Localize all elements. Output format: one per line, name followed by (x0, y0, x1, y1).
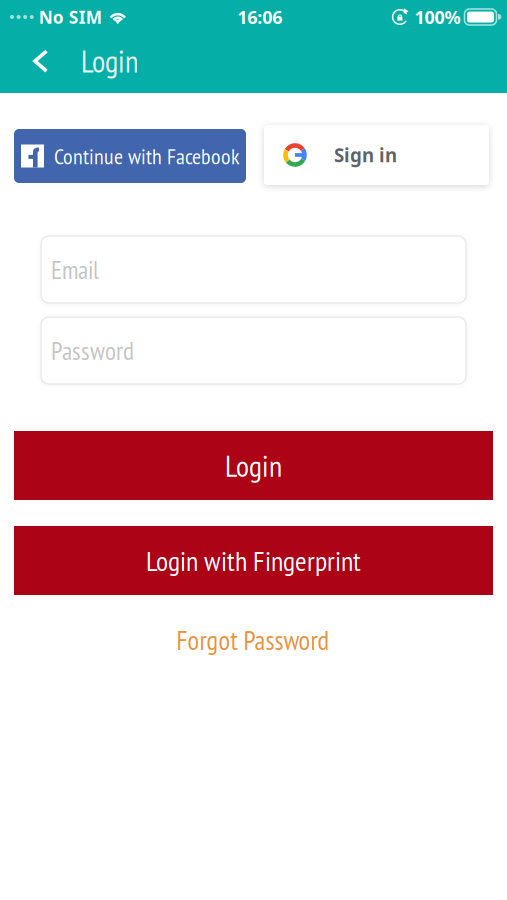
button[interactable]: Back (15, 36, 67, 86)
button[interactable]: Login (14, 431, 493, 500)
button[interactable]: Login with Fingerprint (14, 526, 493, 595)
staticText: 100% (414, 5, 460, 29)
staticText: No SIM (39, 5, 102, 29)
staticText: Forgot Password (176, 623, 329, 657)
button[interactable]: Password (41, 317, 466, 384)
staticText: 16:06 (237, 5, 282, 29)
button[interactable]: Email (41, 236, 466, 303)
staticText: Email (51, 253, 99, 286)
staticText: Login (81, 41, 138, 81)
staticText: Login (225, 446, 282, 485)
button[interactable]: Continue with Facebook (14, 129, 246, 183)
button[interactable]: Forgot Password (153, 623, 353, 657)
staticText: Login with Fingerprint (146, 542, 361, 579)
staticText: Password (51, 334, 134, 367)
button[interactable]: Sign in (264, 125, 489, 185)
staticText: Continue with Facebook (54, 142, 240, 170)
staticText: Sign in (334, 142, 397, 168)
